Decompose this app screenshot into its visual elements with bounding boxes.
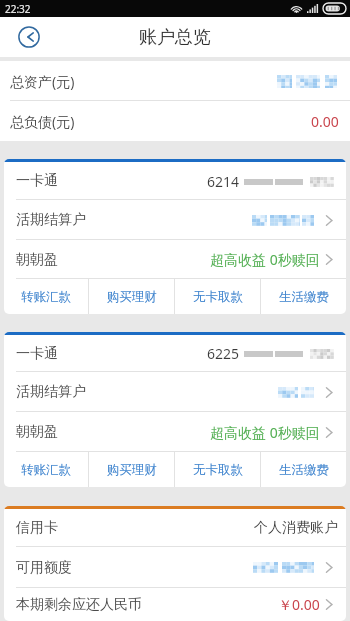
button[interactable]: 一卡通: [4, 162, 346, 200]
staticText: 无卡取款: [193, 462, 243, 478]
button[interactable]: 转账汇款: [4, 279, 88, 314]
staticText: 转账汇款: [21, 289, 71, 305]
staticText: 购买理财: [107, 462, 157, 478]
button[interactable]: 无卡取款: [175, 279, 260, 314]
button[interactable]: 信用卡: [4, 509, 346, 547]
button[interactable]: 朝朝盈: [4, 412, 346, 452]
staticText: 信用卡: [16, 519, 58, 537]
button[interactable]: 购买理财: [89, 279, 174, 314]
button[interactable]: 生活缴费: [261, 279, 346, 314]
staticText: 22:32: [5, 2, 31, 16]
staticText: 朝朝盈: [16, 251, 58, 269]
button[interactable]: 一卡通: [4, 335, 346, 372]
staticText: 6225: [207, 344, 240, 363]
button[interactable]: 总资产(元): [0, 61, 350, 101]
button[interactable]: 本期剩余应还人民币: [4, 588, 346, 621]
staticText: 生活缴费: [279, 289, 329, 305]
staticText: ￥0.00: [278, 595, 320, 614]
staticText: 活期结算户: [16, 383, 86, 401]
button[interactable]: 生活缴费: [261, 452, 346, 487]
staticText: 本期剩余应还人民币: [16, 596, 142, 614]
button[interactable]: 无卡取款: [175, 452, 260, 487]
staticText: 账户总览: [139, 26, 211, 49]
button[interactable]: Back: [18, 26, 40, 48]
staticText: 转账汇款: [21, 462, 71, 478]
staticText: 可用额度: [16, 559, 72, 577]
staticText: 一卡通: [16, 345, 58, 363]
button[interactable]: 活期结算户: [4, 372, 346, 412]
staticText: 超高收益 0秒赎回: [210, 250, 320, 269]
staticText: 0.00: [311, 112, 339, 131]
staticText: 总负债(元): [10, 112, 75, 131]
staticText: 活期结算户: [16, 211, 86, 229]
button[interactable]: 活期结算户: [4, 200, 346, 240]
staticText: 一卡通: [16, 172, 58, 190]
button[interactable]: 转账汇款: [4, 452, 88, 487]
staticText: 个人消费账户: [254, 519, 338, 537]
button[interactable]: 朝朝盈: [4, 240, 346, 279]
staticText: 购买理财: [107, 289, 157, 305]
button[interactable]: 可用额度: [4, 547, 346, 588]
staticText: 总资产(元): [10, 72, 75, 91]
staticText: 朝朝盈: [16, 423, 58, 441]
staticText: 6214: [207, 172, 240, 191]
staticText: 超高收益 0秒赎回: [210, 423, 320, 442]
button[interactable]: 购买理财: [89, 452, 174, 487]
staticText: 生活缴费: [279, 462, 329, 478]
button[interactable]: 总负债(元): [0, 101, 350, 141]
staticText: 无卡取款: [193, 289, 243, 305]
